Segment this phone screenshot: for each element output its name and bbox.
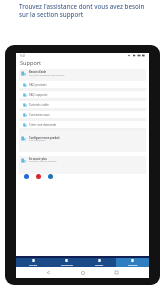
button[interactable]: Catalogue (50, 258, 83, 267)
button[interactable]: Tutoriels vidéo (19, 101, 146, 111)
staticText: Accueil (29, 263, 38, 266)
other: Recents (115, 271, 118, 274)
staticText: Support (128, 263, 138, 266)
staticText: Configurer mon produit (29, 136, 60, 140)
staticText: Créer une demande (29, 123, 57, 127)
staticText: Contactez-vous (29, 113, 50, 117)
button[interactable]: Configurer mon produit (19, 134, 146, 152)
button[interactable]: YouTube (36, 174, 41, 179)
staticText: Trouvez l'assistance dont vous avez beso… (19, 2, 145, 10)
staticText: Projets (95, 263, 104, 266)
other: Back (47, 271, 50, 274)
other: Home (81, 271, 85, 275)
button[interactable]: Créer une demande (19, 121, 146, 131)
button[interactable]: Projets (83, 258, 116, 267)
button[interactable]: Besoin d'aide (19, 69, 146, 81)
button[interactable]: LinkedIn (48, 174, 53, 179)
staticText: FAQ supports (29, 93, 48, 97)
staticText: Formations, astuces, actualités (29, 160, 57, 163)
button[interactable]: Support (116, 258, 149, 267)
staticText: Page d'installation (29, 139, 46, 142)
staticText: 9:41 (20, 54, 26, 58)
staticText: En savoir plus (29, 157, 47, 161)
staticText: FAQ produits (29, 83, 47, 87)
staticText: Catalogue (61, 263, 73, 266)
button[interactable]: Facebook (24, 174, 29, 179)
button[interactable]: Contactez-vous (19, 111, 146, 121)
button[interactable]: FAQ produits (19, 81, 146, 91)
button[interactable]: En savoir plus (19, 156, 146, 174)
staticText: Support (20, 59, 42, 67)
staticText: sur la section support (19, 10, 84, 18)
button[interactable]: Accueil (16, 258, 50, 267)
staticText: Besoin d'aide (29, 70, 47, 74)
staticText: Tutoriels vidéo (29, 103, 49, 107)
staticText: FAQ, vidéos explicatives, contactez-nous (29, 74, 65, 77)
button[interactable]: FAQ supports (19, 91, 146, 101)
